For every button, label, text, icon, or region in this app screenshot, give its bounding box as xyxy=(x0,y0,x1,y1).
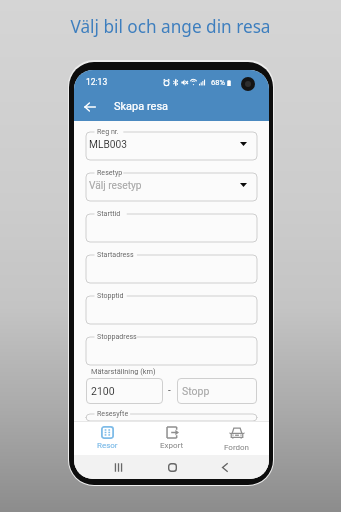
staticText: Resetyp xyxy=(97,168,123,176)
staticText: Välj bil och ange din resa xyxy=(0,15,341,38)
staticText: 68% xyxy=(211,78,225,87)
staticText: MLB003 xyxy=(89,139,127,151)
button[interactable]: Back xyxy=(215,457,235,477)
staticText: Stoppadress xyxy=(97,332,137,340)
staticText: Starttid xyxy=(97,209,121,217)
button[interactable]: Stoppadress xyxy=(86,332,257,365)
button[interactable]: Home xyxy=(162,457,182,477)
button[interactable]: Recents xyxy=(108,457,128,477)
button[interactable]: Fordon xyxy=(208,421,266,455)
staticText: Reg nr. xyxy=(97,127,119,135)
staticText: 12:13 xyxy=(86,77,108,87)
button[interactable]: Reg nr. xyxy=(86,127,257,160)
staticText: Skapa resa xyxy=(114,100,169,113)
staticText: Mätarställning (km) xyxy=(91,367,156,376)
button[interactable]: Resor xyxy=(78,421,136,455)
staticText: Stopptid xyxy=(97,291,124,299)
button[interactable]: 2100 xyxy=(86,378,163,404)
staticText: Export xyxy=(160,441,184,450)
button[interactable]: Resetyp xyxy=(86,168,257,201)
staticText: Startadress xyxy=(97,250,134,258)
staticText: Resesyfte xyxy=(97,409,129,417)
staticText: Resor xyxy=(97,441,118,450)
staticText: Välj resetyp xyxy=(89,180,142,192)
button[interactable]: Back xyxy=(78,95,102,119)
button[interactable]: Starttid xyxy=(86,209,257,242)
staticText: - xyxy=(168,385,171,397)
staticText: 2100 xyxy=(91,385,115,397)
staticText: Stopp xyxy=(182,385,210,397)
button[interactable]: Resesyfte xyxy=(86,409,257,421)
button[interactable]: Startadress xyxy=(86,250,257,283)
button[interactable]: Stopptid xyxy=(86,291,257,324)
staticText: Fordon xyxy=(224,443,250,452)
button[interactable]: Stopp xyxy=(177,378,257,404)
button[interactable]: Export xyxy=(143,421,201,455)
